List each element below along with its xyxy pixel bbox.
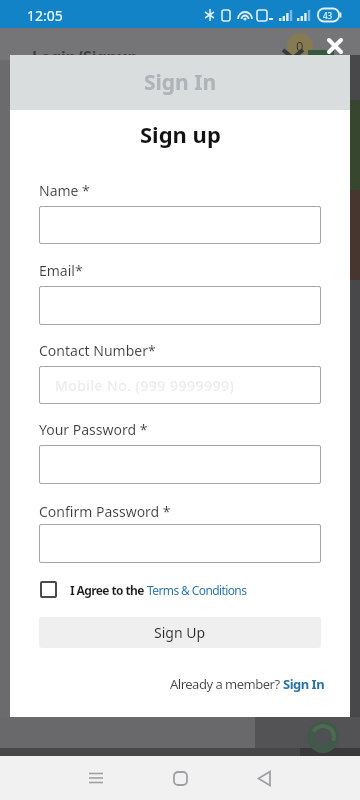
staticText: Sign In [144, 68, 217, 97]
staticText: Sign up [140, 119, 221, 149]
button[interactable] [39, 206, 321, 244]
staticText: Name * [39, 181, 90, 200]
button[interactable]: Sign In [283, 675, 325, 693]
button[interactable]: Sign In [10, 55, 350, 110]
button[interactable] [39, 524, 321, 563]
staticText: Mobile No. (999 9999999) [55, 376, 235, 395]
button[interactable]: I Agree to the [40, 581, 247, 598]
button[interactable]: Mobile No. (999 9999999) [39, 366, 321, 404]
button[interactable] [234, 756, 294, 800]
staticText: Your Password * [39, 420, 148, 439]
staticText: Contact Number* [39, 341, 156, 360]
staticText: 12:05 [27, 6, 63, 25]
staticText: Email* [39, 261, 83, 280]
button[interactable] [39, 445, 321, 484]
staticText: I Agree to the [70, 582, 147, 598]
staticText: Already a member? [170, 675, 283, 693]
button[interactable] [322, 33, 348, 59]
button[interactable] [150, 756, 210, 800]
staticText: Confirm Password * [39, 502, 171, 521]
button[interactable] [39, 286, 321, 325]
staticText: Sign Up [154, 623, 206, 642]
staticText: 43 [323, 10, 333, 21]
staticText: 0 [296, 37, 304, 55]
button[interactable]: Sign Up [39, 617, 321, 648]
button[interactable]: Terms & Conditions [147, 582, 247, 598]
staticText: Login/Signup [32, 46, 138, 68]
button[interactable] [66, 756, 126, 800]
